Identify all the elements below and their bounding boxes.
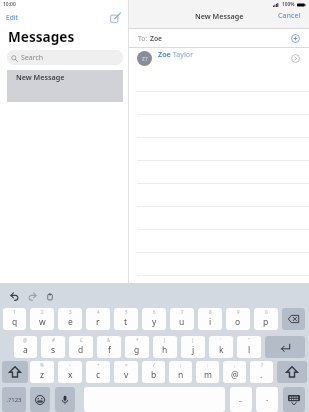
button[interactable]: Cancel — [278, 10, 301, 20]
button[interactable]: .?123 — [2, 387, 26, 412]
staticText: u — [179, 316, 185, 328]
button[interactable]: Compose — [110, 12, 121, 23]
staticText: 100% — [282, 1, 295, 8]
button[interactable]: 3 — [58, 308, 82, 330]
staticText: + — [97, 362, 100, 368]
staticText: i — [209, 316, 212, 328]
button[interactable]: , — [223, 361, 246, 383]
button[interactable]: 9 — [226, 308, 250, 330]
staticText: / — [153, 362, 155, 368]
staticText: " — [248, 337, 250, 343]
staticText: ? — [261, 362, 263, 368]
staticText: 2 — [41, 309, 44, 315]
staticText: £ — [80, 337, 83, 343]
button[interactable]: / — [142, 361, 165, 383]
staticText: = — [125, 362, 128, 368]
staticText: - — [69, 362, 71, 368]
button[interactable]: Undo — [10, 292, 19, 301]
button[interactable]: # — [41, 336, 65, 358]
staticText: @ — [23, 337, 28, 343]
button[interactable]: 7 — [170, 308, 194, 330]
staticText: Edit — [6, 13, 18, 22]
staticText: 5 — [125, 309, 128, 315]
staticText: g — [134, 344, 140, 356]
staticText: r — [96, 316, 100, 328]
staticText: 7 — [181, 309, 184, 315]
staticText: Zoe — [150, 34, 163, 43]
staticText: m — [204, 369, 212, 381]
button[interactable]: New Message — [7, 70, 123, 102]
staticText: v — [124, 369, 129, 381]
staticText: w — [39, 316, 46, 328]
button[interactable]: ? — [250, 361, 273, 383]
button[interactable]: Backspace — [282, 308, 305, 330]
button[interactable]: 4 — [86, 308, 110, 330]
staticText: * — [136, 337, 139, 343]
staticText: 3 — [69, 309, 72, 315]
button[interactable]: 8 — [198, 308, 222, 330]
button[interactable]: Add contact — [291, 34, 300, 43]
staticText: t — [124, 316, 128, 328]
staticText: ( — [164, 337, 166, 343]
button[interactable]: @ — [14, 336, 37, 358]
staticText: New Message — [16, 72, 65, 82]
button[interactable]: Emoji — [30, 387, 50, 412]
button[interactable]: " — [237, 336, 261, 358]
button[interactable]: ZT — [129, 48, 309, 91]
staticText: 0 — [265, 309, 268, 315]
button[interactable]: + — [86, 361, 110, 383]
staticText: : — [207, 362, 209, 368]
button[interactable]: Shift — [277, 361, 307, 383]
button[interactable]: - — [58, 361, 82, 383]
staticText: z — [40, 369, 44, 381]
button[interactable]: Shift — [2, 361, 28, 383]
staticText: % — [40, 362, 44, 368]
staticText: # — [52, 337, 55, 343]
button[interactable]: % — [30, 361, 54, 383]
button[interactable]: ) — [181, 336, 205, 358]
button[interactable]: Redo — [28, 292, 37, 301]
button[interactable]: _ — [230, 387, 252, 412]
staticText: & — [107, 337, 111, 343]
button[interactable]: : — [196, 361, 219, 383]
staticText: ; — [180, 362, 182, 368]
button[interactable]: Dictate — [55, 387, 75, 412]
button[interactable]: Search — [7, 50, 123, 65]
staticText: d — [78, 344, 84, 356]
staticText: _ — [239, 394, 243, 404]
button[interactable]: 1 — [3, 308, 26, 330]
staticText: 6 — [153, 309, 156, 315]
button[interactable]: ' — [209, 336, 233, 358]
button[interactable]: Return — [265, 336, 305, 358]
staticText: b — [151, 369, 157, 381]
button[interactable]: £ — [69, 336, 93, 358]
staticText: n — [178, 369, 184, 381]
button[interactable]: 5 — [114, 308, 138, 330]
button[interactable]: 2 — [30, 308, 54, 330]
staticText: Zoe — [158, 49, 171, 59]
staticText: e — [68, 316, 73, 328]
staticText: p — [263, 316, 269, 328]
button[interactable]: * — [125, 336, 149, 358]
button[interactable]: ; — [169, 361, 192, 383]
staticText: 9 — [237, 309, 240, 315]
button[interactable]: Edit — [6, 11, 18, 20]
button[interactable]: & — [97, 336, 121, 358]
button[interactable]: ( — [153, 336, 177, 358]
staticText: 10:00 — [3, 1, 16, 8]
staticText: To: — [138, 34, 148, 43]
staticText: 4 — [97, 309, 100, 315]
button[interactable]: - — [256, 387, 278, 412]
staticText: 8 — [209, 309, 212, 315]
staticText: Taylor — [171, 49, 194, 59]
button[interactable]: Details — [291, 54, 300, 63]
button[interactable]: Hide keyboard — [283, 387, 305, 412]
staticText: .?123 — [7, 396, 22, 404]
staticText: y — [152, 316, 157, 328]
button[interactable]: 0 — [254, 308, 278, 330]
button[interactable]: Paste — [46, 293, 54, 301]
button[interactable]: 6 — [142, 308, 166, 330]
button[interactable]: = — [114, 361, 138, 383]
staticText: q — [12, 316, 18, 328]
